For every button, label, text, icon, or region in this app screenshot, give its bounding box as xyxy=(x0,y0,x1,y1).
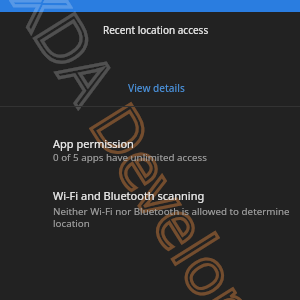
button[interactable]: Recent location access xyxy=(6,18,300,42)
staticText: 0 of 5 apps have unlimited access xyxy=(53,151,207,164)
staticText: Wi-Fi and Bluetooth scanning xyxy=(53,188,205,203)
staticText: Recent location access xyxy=(103,23,209,37)
staticText: Neither Wi-Fi nor Bluetooth is allowed t… xyxy=(53,205,292,230)
staticText: App permission xyxy=(53,136,134,151)
button[interactable]: View details xyxy=(6,79,300,97)
button[interactable]: Wi-Fi and Bluetooth scanning xyxy=(0,188,300,230)
staticText: View details xyxy=(128,81,185,95)
button[interactable]: App permission xyxy=(0,136,300,164)
